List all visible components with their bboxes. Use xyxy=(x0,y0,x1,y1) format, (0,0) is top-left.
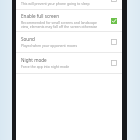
button[interactable]: Night mode xyxy=(16,53,122,73)
button[interactable]: This will prevent your phone going to sl… xyxy=(16,0,122,9)
button[interactable]: Night mode, unchecked xyxy=(106,53,122,73)
button[interactable]: Enable full screen xyxy=(16,10,122,31)
staticText: Recommended for small screens and landsc… xyxy=(21,20,98,29)
button[interactable]: Sound, unchecked xyxy=(106,32,122,52)
staticText: Enable full screen xyxy=(21,13,59,19)
staticText: Sound xyxy=(21,36,35,42)
staticText: Night mode xyxy=(21,57,47,63)
staticText: This will prevent your phone going to sl… xyxy=(21,1,90,6)
button[interactable]: Sound xyxy=(16,32,122,52)
button[interactable]: Keep screen on, unchecked xyxy=(106,0,122,9)
staticText: Played when your opponent moves xyxy=(21,43,78,48)
button[interactable]: Enable full screen, checked xyxy=(106,10,122,31)
staticText: Force the app into night mode xyxy=(21,64,70,69)
